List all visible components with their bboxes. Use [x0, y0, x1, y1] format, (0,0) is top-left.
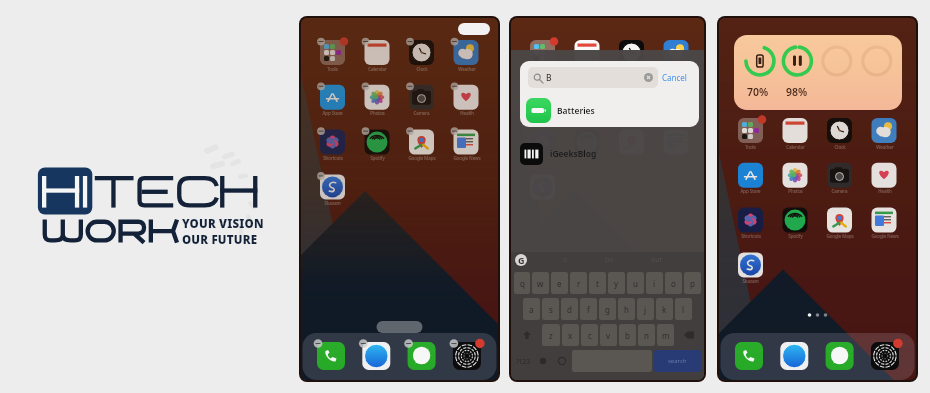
button[interactable]: h [618, 298, 635, 320]
button[interactable]: Weather [863, 144, 906, 150]
staticText: h [624, 304, 629, 315]
button[interactable]: Tools [311, 66, 354, 72]
staticText: Photos [370, 110, 385, 116]
button[interactable]: Clock [818, 144, 861, 150]
staticText: be [605, 255, 614, 265]
button[interactable]: Camera [400, 110, 443, 116]
staticText: G [518, 254, 525, 266]
button[interactable]: iGeeksBlog [519, 143, 597, 165]
button[interactable]: Cancel [658, 72, 691, 83]
button[interactable]: search [654, 350, 701, 372]
button[interactable]: Photos [774, 188, 817, 194]
button[interactable]: Shortcuts [729, 233, 772, 239]
button[interactable]: Batteries widget [734, 35, 902, 110]
staticText: v [606, 330, 611, 341]
button[interactable]: shift [514, 324, 540, 346]
button[interactable]: u [627, 272, 644, 294]
staticText: Google Maps [408, 155, 436, 161]
staticText: s [549, 304, 553, 315]
button[interactable]: App Store [311, 110, 354, 116]
button[interactable]: t [589, 272, 606, 294]
staticText: Weather [876, 144, 894, 150]
button[interactable]: j [637, 298, 654, 320]
button[interactable]: q [514, 272, 530, 294]
staticText: x [568, 330, 573, 341]
button[interactable]: ?123 [514, 350, 532, 372]
button[interactable]: Shazam [729, 278, 772, 284]
button[interactable]: Photos [356, 110, 399, 116]
staticText: 70% [747, 85, 769, 99]
button[interactable]: Health [445, 110, 488, 116]
staticText: y [614, 278, 619, 289]
staticText: r [577, 278, 581, 289]
staticText: m [662, 330, 670, 341]
button[interactable]: g [599, 298, 616, 320]
button[interactable]: o [665, 272, 682, 294]
button[interactable]: i [646, 272, 663, 294]
button[interactable]: b [619, 324, 636, 346]
staticText: n [644, 330, 649, 341]
button[interactable]: Google News [863, 233, 906, 239]
button[interactable]: Google News [445, 155, 488, 161]
button[interactable]: c [581, 324, 598, 346]
button[interactable]: v [600, 324, 617, 346]
button[interactable]: k [656, 298, 673, 320]
button[interactable]: Clock [400, 66, 443, 72]
button[interactable]: p [684, 272, 701, 294]
button[interactable]: Calendar [356, 66, 399, 72]
staticText: Shazam [324, 200, 341, 206]
button[interactable]: e [551, 272, 568, 294]
staticText: OUR FUTURE [182, 232, 258, 248]
staticText: d [567, 304, 572, 315]
staticText: Calendar [368, 66, 387, 72]
staticText: Health [460, 110, 474, 116]
button[interactable]: f [580, 298, 597, 320]
button[interactable]: d [561, 298, 578, 320]
button[interactable]: Google Maps [818, 233, 861, 239]
staticText: k [662, 304, 667, 315]
staticText: Clock [416, 66, 428, 72]
staticText: ?123 [516, 357, 530, 366]
button[interactable]: x [562, 324, 579, 346]
button[interactable]: Calendar [774, 144, 817, 150]
button[interactable]: z [542, 324, 560, 346]
button[interactable]: n [638, 324, 655, 346]
button[interactable]: a [523, 298, 540, 320]
staticText: Google Maps [826, 233, 854, 239]
staticText: w [537, 278, 544, 289]
button[interactable]: Home screen edit mode [301, 18, 498, 380]
staticText: e [557, 278, 562, 289]
button[interactable]: Health [863, 188, 906, 194]
button[interactable]: Settings [534, 350, 551, 372]
button[interactable]: l [675, 298, 692, 320]
staticText: Tools [327, 66, 338, 72]
button[interactable]: App Store [729, 188, 772, 194]
button[interactable]: Spotify [774, 233, 817, 239]
button[interactable]: Weather [445, 66, 488, 72]
button[interactable]: HiTechWork logo [34, 160, 266, 252]
staticText: o [671, 278, 676, 289]
button[interactable]: B [528, 67, 658, 88]
staticText: f [587, 304, 590, 315]
button[interactable]: Shortcuts [311, 155, 354, 161]
button[interactable]: Google Maps [400, 155, 443, 161]
staticText: B [546, 72, 552, 84]
staticText: b [625, 330, 630, 341]
staticText: Shazam [742, 278, 759, 284]
button[interactable]: Google [515, 254, 527, 266]
button[interactable]: y [608, 272, 625, 294]
button[interactable]: Batteries [520, 94, 699, 127]
staticText: t [596, 278, 599, 289]
button[interactable]: Tools [729, 144, 772, 150]
button[interactable]: Shazam [311, 200, 354, 206]
button[interactable]: Emoji [553, 350, 570, 372]
button[interactable]: s [542, 298, 559, 320]
button[interactable]: Spotify [356, 155, 399, 161]
button[interactable]: r [570, 272, 587, 294]
button[interactable]: w [532, 272, 549, 294]
button[interactable]: Camera [818, 188, 861, 194]
button[interactable]: m [657, 324, 674, 346]
button[interactable]: Backspace [676, 324, 701, 346]
staticText: Weather [458, 66, 476, 72]
